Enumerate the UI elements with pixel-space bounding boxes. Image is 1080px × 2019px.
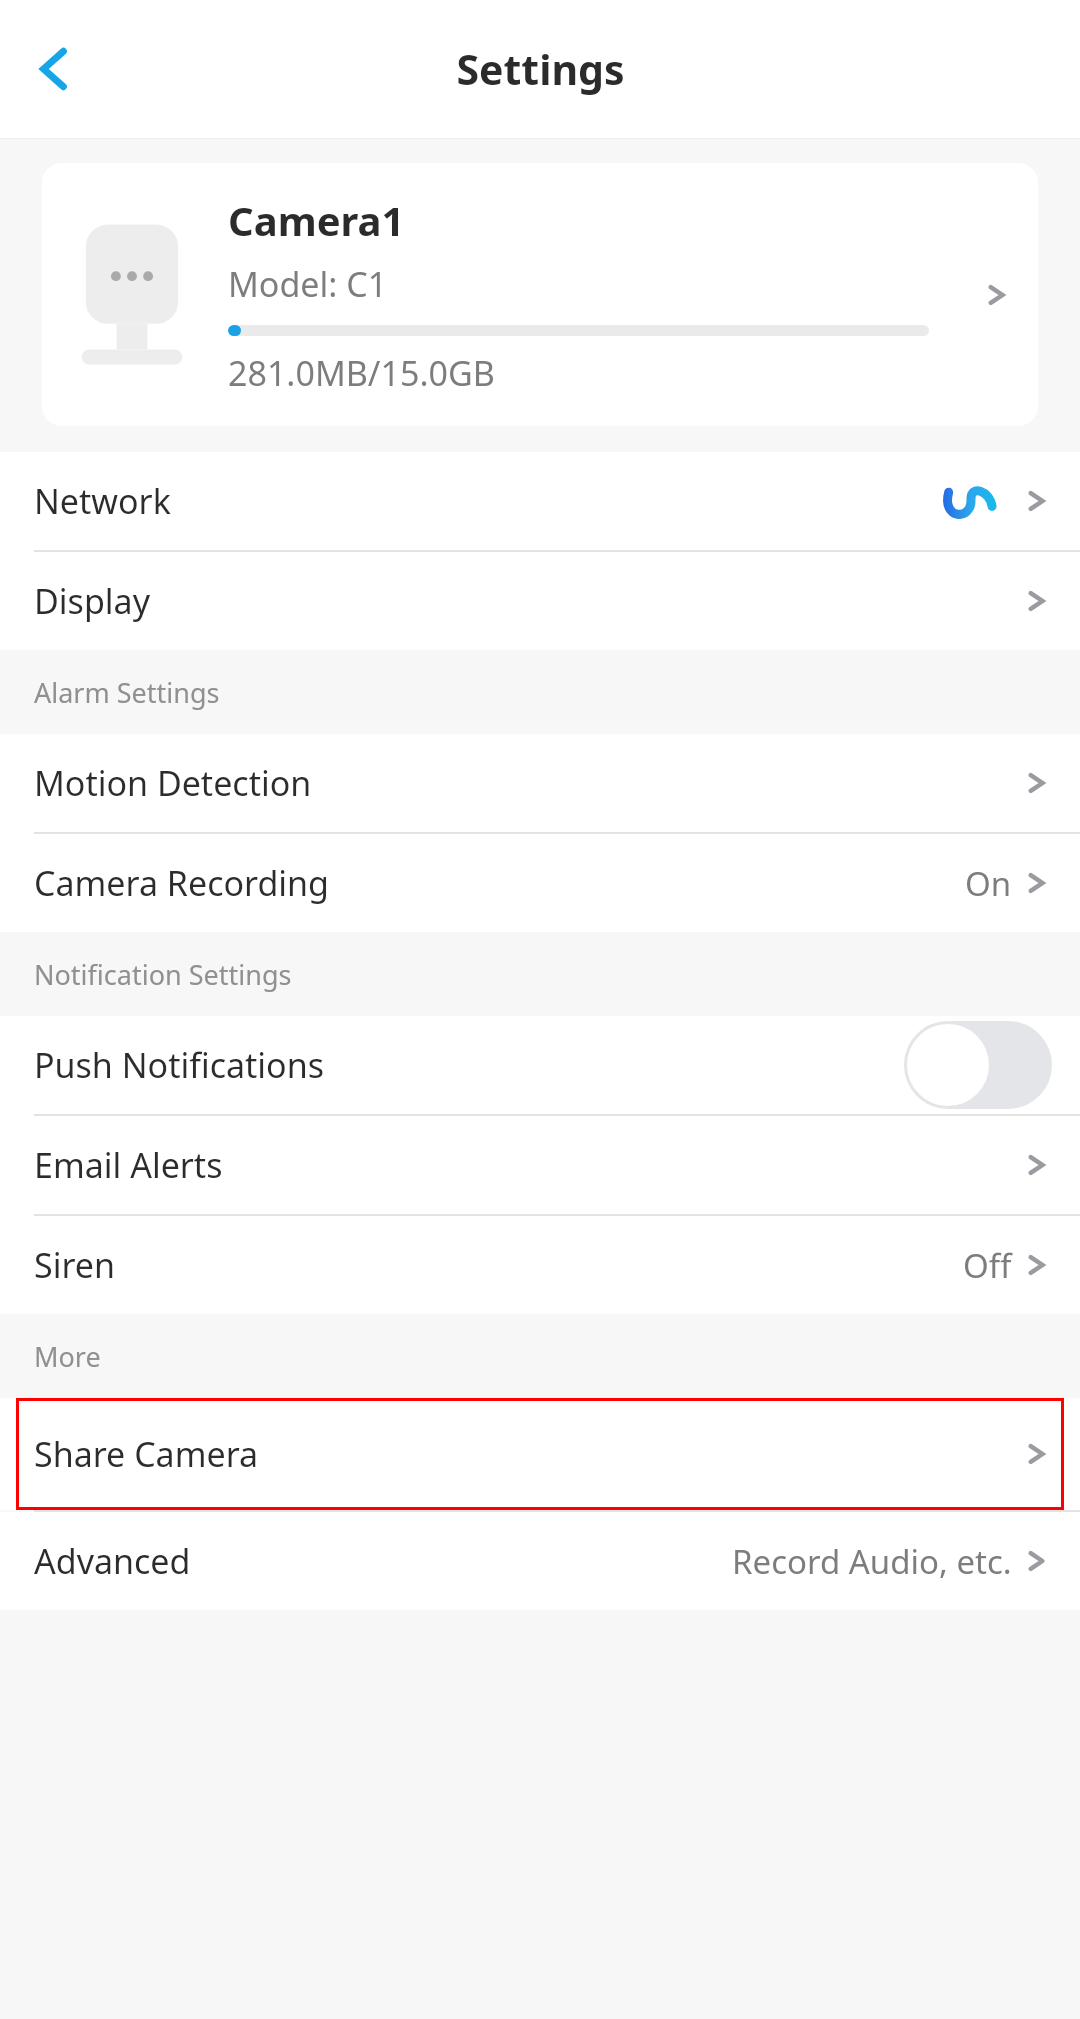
staticText: Record Audio, etc. <box>732 1539 1012 1584</box>
staticText: Camera Recording <box>34 860 329 906</box>
staticText: Siren <box>34 1242 115 1288</box>
staticText: Share Camera <box>34 1431 259 1477</box>
button[interactable]: Display <box>0 552 1080 650</box>
staticText: Advanced <box>34 1538 191 1584</box>
button[interactable]: Camera1 <box>42 163 1038 426</box>
staticText: More <box>34 1338 101 1375</box>
button[interactable]: Back <box>14 29 94 109</box>
staticText: Display <box>34 578 150 624</box>
staticText: Push Notifications <box>34 1042 324 1088</box>
staticText: Off <box>963 1243 1012 1288</box>
staticText: Alarm Settings <box>34 674 220 711</box>
button[interactable]: Network <box>0 452 1080 550</box>
staticText: Model: C1 <box>228 261 388 307</box>
button[interactable]: Motion Detection <box>0 734 1080 832</box>
button[interactable]: Push Notifications <box>0 1016 1080 1114</box>
button[interactable]: Push Notifications toggle <box>904 1021 1052 1109</box>
staticText: Network <box>34 478 171 524</box>
staticText: Motion Detection <box>34 760 312 806</box>
button[interactable]: Email Alerts <box>0 1116 1080 1214</box>
staticText: 281.0MB/15.0GB <box>228 350 495 396</box>
staticText: Camera1 <box>228 193 405 247</box>
staticText: On <box>965 861 1012 906</box>
staticText: Email Alerts <box>34 1142 223 1188</box>
button[interactable]: Siren <box>0 1216 1080 1314</box>
staticText: Settings <box>456 41 625 97</box>
button[interactable]: Advanced <box>0 1512 1080 1610</box>
staticText: Notification Settings <box>34 956 292 993</box>
button[interactable]: Share Camera <box>0 1398 1080 1510</box>
button[interactable]: Camera Recording <box>0 834 1080 932</box>
